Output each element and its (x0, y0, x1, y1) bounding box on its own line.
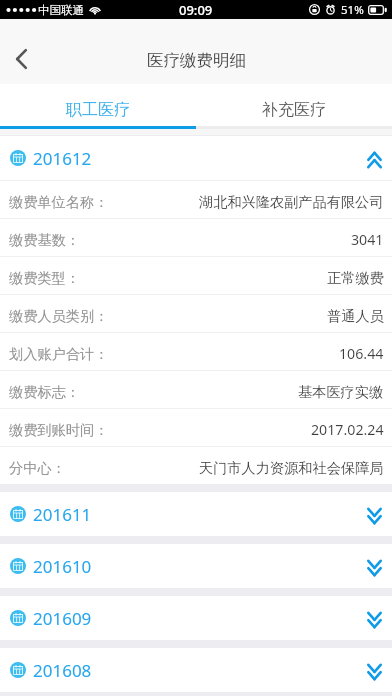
staticText: 职工医疗 (66, 100, 130, 120)
staticText: 中国联通 (38, 3, 84, 17)
staticText: 缴费标志： (9, 383, 80, 401)
button[interactable]: 201610 (0, 544, 392, 588)
staticText: 分中心： (9, 459, 66, 477)
staticText: 201609 (33, 607, 92, 630)
staticText: 缴费人员类别： (9, 307, 109, 325)
staticText: 缴费基数： (9, 231, 80, 249)
button[interactable]: Expand (367, 656, 382, 686)
staticText: 天门市人力资源和社会保障局 (199, 459, 384, 477)
staticText: 51% (341, 2, 364, 18)
button[interactable]: 职工医疗 (0, 84, 196, 126)
staticText: 缴费类型： (9, 269, 80, 287)
button[interactable]: 201609 (0, 596, 392, 640)
button[interactable]: 201611 (0, 492, 392, 536)
staticText: 201608 (33, 659, 92, 682)
staticText: 2017.02.24 (311, 420, 384, 439)
staticText: 划入账户合计： (9, 345, 109, 363)
staticText: 湖北和兴隆农副产品有限公司 (199, 193, 384, 211)
staticText: 基本医疗实缴 (298, 383, 384, 401)
staticText: 普通人员 (327, 307, 384, 325)
button[interactable]: Back (0, 38, 42, 80)
staticText: 201611 (33, 503, 92, 526)
button[interactable]: Expand (367, 500, 382, 530)
button[interactable]: Expand (367, 552, 382, 582)
button[interactable]: 补充医疗 (196, 84, 392, 126)
staticText: 补充医疗 (262, 100, 326, 120)
staticText: 106.44 (339, 344, 384, 363)
staticText: 201612 (33, 147, 92, 170)
button[interactable]: 201612 (0, 136, 392, 180)
staticText: 缴费单位名称： (9, 193, 109, 211)
button[interactable]: Collapse (367, 144, 382, 174)
button[interactable]: Expand (367, 604, 382, 634)
staticText: 正常缴费 (327, 269, 384, 287)
staticText: 缴费到账时间： (9, 421, 109, 439)
staticText: 09:09 (179, 1, 213, 19)
staticText: 3041 (351, 230, 384, 249)
staticText: 医疗缴费明细 (147, 50, 246, 71)
staticText: 201610 (33, 555, 92, 578)
button[interactable]: 201608 (0, 648, 392, 692)
